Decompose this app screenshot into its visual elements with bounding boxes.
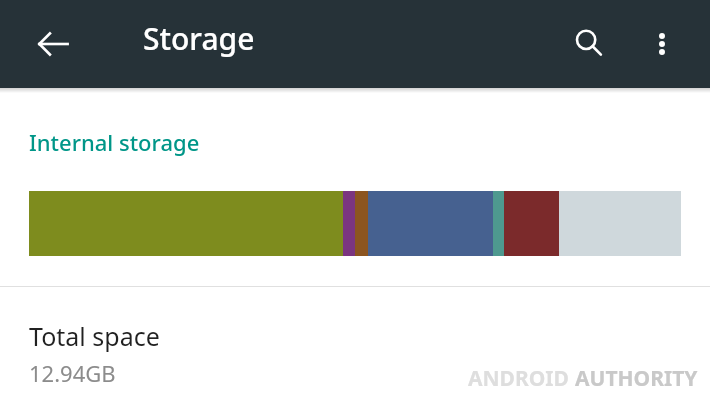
staticText: Storage (143, 18, 255, 59)
button[interactable]: Navigate up (17, 0, 89, 88)
button[interactable]: More options (630, 0, 694, 88)
staticText: Internal storage (29, 127, 200, 157)
staticText: 12.94GB (29, 358, 116, 388)
button[interactable]: Search (553, 0, 625, 88)
staticText: AUTHORITY (575, 364, 698, 393)
staticText: Total space (29, 319, 160, 353)
button[interactable]: Total space (0, 287, 710, 400)
staticText: ANDROID (468, 364, 575, 393)
button[interactable]: Storage usage breakdown (29, 191, 681, 256)
